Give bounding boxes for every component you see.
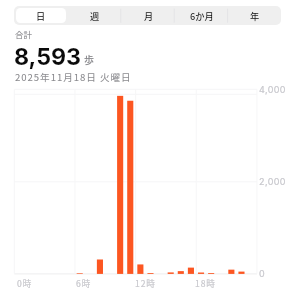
staticText: 合計	[15, 28, 33, 40]
staticText: 4,000	[259, 84, 286, 95]
button[interactable]: 6か月	[177, 8, 226, 23]
staticText: 12時	[135, 277, 156, 289]
staticText: 0時	[17, 277, 33, 289]
button[interactable]: 年	[230, 8, 279, 23]
staticText: 週	[90, 9, 100, 22]
staticText: 月	[144, 9, 154, 22]
staticText: 6か月	[190, 9, 214, 22]
staticText: 2,000	[259, 176, 286, 187]
staticText: 2025年11月18日 火曜日	[15, 70, 132, 84]
button[interactable]: 月	[124, 8, 173, 23]
staticText: 0	[259, 268, 266, 279]
button[interactable]: 週	[70, 8, 120, 23]
staticText: 8,593	[14, 43, 82, 71]
staticText: 日	[36, 9, 46, 22]
staticText: 歩	[84, 52, 94, 66]
staticText: 6時	[76, 277, 92, 289]
staticText: 18時	[195, 277, 216, 289]
button[interactable]: 日	[16, 8, 66, 23]
staticText: 年	[250, 9, 260, 22]
